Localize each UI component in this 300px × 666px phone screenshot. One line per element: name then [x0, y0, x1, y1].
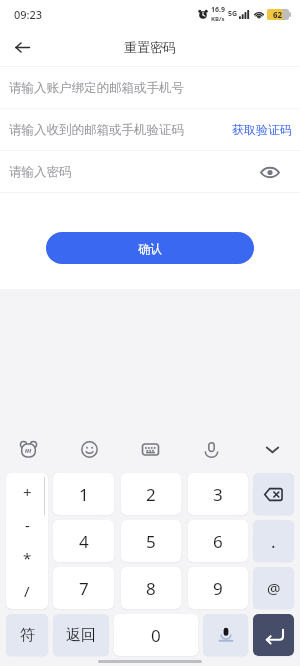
button[interactable]: Keyboard layout [137, 436, 163, 462]
button[interactable]: . [253, 520, 294, 562]
staticText: 确认 [138, 241, 162, 256]
staticText: 5G [228, 9, 238, 19]
staticText: @ [267, 578, 281, 598]
staticText: 6 [213, 530, 223, 553]
button[interactable]: @ [253, 567, 294, 609]
staticText: 请输入账户绑定的邮箱或手机号 [9, 80, 184, 96]
staticText: 重置密码 [124, 39, 176, 55]
button[interactable]: 2 [121, 473, 181, 515]
staticText: 7 [79, 577, 89, 600]
staticText: 5 [146, 530, 156, 553]
staticText: KB/s [211, 15, 225, 23]
staticText: 获取验证码 [232, 122, 292, 137]
staticText: 3 [213, 483, 223, 506]
button[interactable]: 6 [188, 520, 248, 562]
button[interactable]: 获取验证码 [230, 116, 294, 143]
button[interactable]: 4 [53, 520, 114, 562]
button[interactable]: 3 [188, 473, 248, 515]
button[interactable]: 5 [121, 520, 181, 562]
staticText: 返回 [66, 626, 96, 645]
button[interactable]: 符 [6, 614, 48, 656]
staticText: . [271, 530, 276, 553]
staticText: + [23, 482, 32, 502]
button[interactable]: Emoji [76, 436, 102, 462]
button[interactable]: 7 [53, 567, 114, 609]
staticText: 9 [213, 577, 223, 600]
staticText: - [25, 515, 30, 535]
staticText: 62 [273, 9, 283, 20]
button[interactable]: 返回 [53, 614, 109, 656]
button[interactable] [253, 614, 294, 656]
staticText: 8 [146, 577, 156, 600]
button[interactable]: 8 [121, 567, 181, 609]
staticText: 0 [151, 624, 161, 647]
button[interactable]: Hide keyboard [259, 436, 285, 462]
staticText: 符 [20, 626, 35, 645]
button[interactable]: Back [8, 33, 36, 61]
staticText: 1 [79, 483, 89, 506]
staticText: 请输入密码 [9, 164, 72, 180]
staticText: 09:23 [14, 7, 43, 22]
button[interactable]: + [6, 473, 48, 609]
staticText: / [24, 581, 30, 601]
staticText: 4 [79, 530, 89, 553]
staticText: 16.9 [211, 5, 225, 15]
button[interactable]: 9 [188, 567, 248, 609]
button[interactable] [203, 614, 248, 656]
button[interactable]: 0 [114, 614, 198, 656]
staticText: 2 [146, 483, 156, 506]
button[interactable]: 1 [53, 473, 114, 515]
button[interactable]: Show password [257, 159, 283, 185]
button[interactable]: Input method [15, 436, 41, 462]
staticText: * [23, 548, 32, 568]
button[interactable]: 确认 [46, 232, 254, 264]
button[interactable]: Voice input [198, 436, 224, 462]
button[interactable] [253, 473, 294, 515]
staticText: 请输入收到的邮箱或手机验证码 [9, 122, 184, 138]
